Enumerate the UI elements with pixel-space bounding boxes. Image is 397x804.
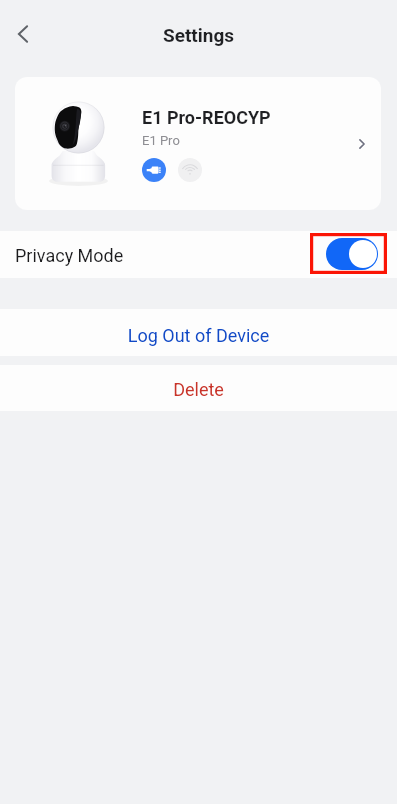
staticText: Delete xyxy=(0,379,397,400)
button[interactable]: Delete xyxy=(0,365,397,411)
button[interactable]: Power adapter xyxy=(142,158,166,182)
button[interactable]: Back xyxy=(5,16,41,52)
staticText: Settings xyxy=(0,24,397,46)
staticText: E1 Pro-REOCYP xyxy=(142,107,271,128)
staticText: Privacy Mode xyxy=(15,245,124,266)
button[interactable]: Privacy Mode xyxy=(0,231,397,278)
button[interactable]: E1 Pro-REOCYP xyxy=(15,77,381,210)
staticText: Log Out of Device xyxy=(0,325,397,346)
button[interactable]: Privacy Mode toggle xyxy=(326,238,378,270)
button[interactable]: Log Out of Device xyxy=(0,309,397,356)
staticText: E1 Pro xyxy=(142,133,180,148)
button[interactable]: Wi-Fi xyxy=(178,158,202,182)
